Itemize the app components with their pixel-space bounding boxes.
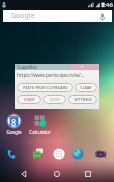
button[interactable]: SETTINGS <box>68 95 97 104</box>
button[interactable]: 8 <box>1 113 26 135</box>
staticText: Google <box>11 11 35 21</box>
button[interactable]: PASTE FROM CLIPBOARD <box>17 83 73 92</box>
staticText: Google <box>6 129 22 135</box>
staticText: CLEAR <box>80 85 92 90</box>
button[interactable]: Back <box>17 167 31 181</box>
button[interactable]: CLEAR <box>75 83 97 92</box>
staticText: SETTINGS <box>74 97 92 102</box>
staticText: https://www.periscope.tv/w/... <box>17 72 85 79</box>
staticText: STOP <box>50 97 60 102</box>
button[interactable]: Home <box>50 167 64 181</box>
button[interactable]: Google <box>3 10 112 22</box>
button[interactable]: Browser <box>71 147 85 161</box>
staticText: START <box>24 97 35 102</box>
staticText: 7:46 <box>101 1 113 9</box>
button[interactable]: Recents <box>81 167 95 181</box>
button[interactable]: https://www.periscope.tv/w/... <box>15 70 99 80</box>
staticText: Calculator <box>29 129 51 135</box>
button[interactable]: Camera <box>94 147 108 161</box>
button[interactable]: START <box>17 95 41 104</box>
staticText: 8 <box>11 116 17 128</box>
button[interactable]: Phone <box>5 147 19 161</box>
staticText: PASTE FROM CLIPBOARD <box>23 85 68 90</box>
button[interactable]: Messaging <box>31 147 45 161</box>
button[interactable]: Calculator <box>27 113 52 135</box>
button[interactable]: STOP <box>43 95 66 104</box>
staticText: ScapeRec <box>17 64 37 70</box>
button[interactable]: Apps <box>52 147 66 161</box>
